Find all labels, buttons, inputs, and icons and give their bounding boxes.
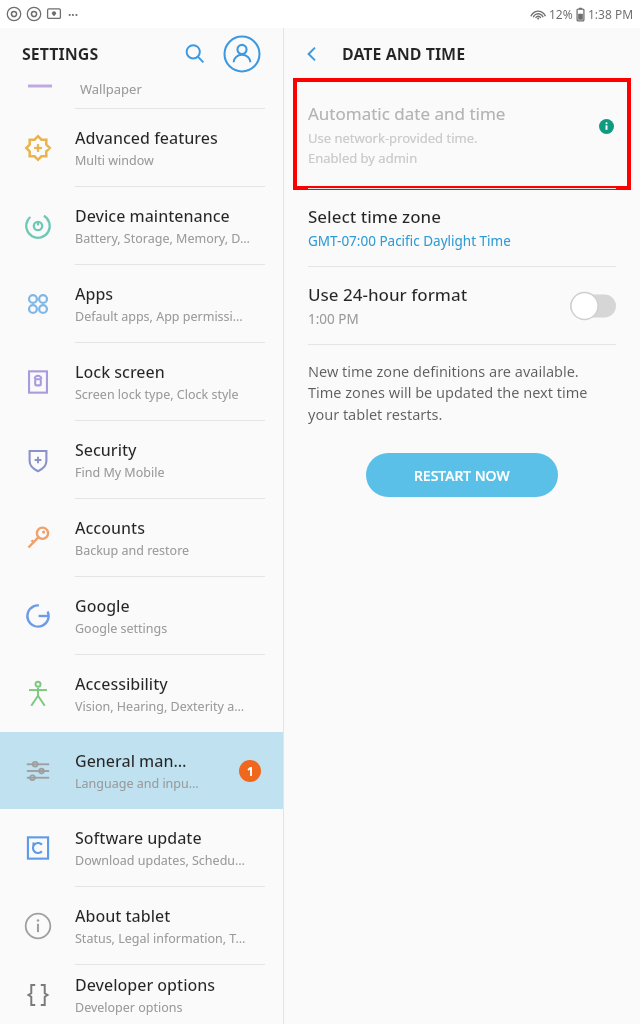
button[interactable]: Developer options (0, 965, 283, 1024)
staticText: Status, Legal information, T… (75, 930, 246, 947)
staticText: Apps (75, 283, 114, 305)
staticText: Accessibility (75, 673, 168, 695)
button[interactable]: Lock screen (0, 343, 283, 420)
staticText: General man… (75, 750, 187, 772)
staticText: Use network-provided time. (308, 129, 478, 147)
button[interactable]: Software update (0, 809, 283, 886)
button[interactable]: Apps (0, 265, 283, 342)
staticText: Enabled by admin (308, 149, 418, 167)
staticText: SETTINGS (22, 43, 99, 65)
staticText: Developer options (75, 974, 216, 996)
staticText: Device maintenance (75, 205, 230, 227)
staticText: Google settings (75, 620, 168, 637)
staticText: 12% (549, 6, 573, 22)
staticText: Find My Mobile (75, 464, 165, 481)
staticText: Download updates, Schedu… (75, 852, 245, 869)
staticText: About tablet (75, 905, 171, 927)
button[interactable]: Use 24-hour format (284, 267, 640, 344)
staticText: Battery, Storage, Memory, D… (75, 230, 250, 247)
button[interactable]: Search (175, 34, 215, 74)
staticText: Select time zone (308, 205, 442, 228)
button[interactable]: Google (0, 577, 283, 654)
staticText: Language and inpu… (75, 775, 199, 792)
staticText: Google (75, 595, 130, 617)
staticText: Developer options (75, 999, 183, 1016)
button[interactable]: About tablet (0, 887, 283, 964)
staticText: Security (75, 439, 137, 461)
button[interactable]: RESTART NOW (366, 453, 558, 497)
button[interactable]: Advanced features (0, 109, 283, 186)
button[interactable]: Security (0, 421, 283, 498)
button[interactable]: Device maintenance (0, 187, 283, 264)
staticText: Backup and restore (75, 542, 190, 559)
staticText: Vision, Hearing, Dexterity a… (75, 698, 245, 715)
staticText: Screen lock type, Clock style (75, 386, 239, 403)
staticText: Advanced features (75, 127, 218, 149)
button[interactable]: Accounts (0, 499, 283, 576)
staticText: Lock screen (75, 361, 165, 383)
staticText: New time zone definitions are available.… (308, 361, 616, 425)
staticText: Software update (75, 827, 202, 849)
staticText: GMT-07:00 Pacific Daylight Time (308, 232, 511, 250)
staticText: Wallpaper (80, 80, 142, 98)
staticText: Default apps, App permissi… (75, 308, 243, 325)
button[interactable]: Accessibility (0, 655, 283, 732)
staticText: RESTART NOW (414, 466, 510, 485)
staticText: Accounts (75, 517, 145, 539)
button[interactable]: Select time zone (284, 189, 640, 266)
staticText: DATE AND TIME (342, 43, 466, 65)
button[interactable]: Back (292, 34, 332, 74)
button[interactable]: Account (221, 33, 263, 75)
staticText: 1:00 PM (308, 310, 359, 328)
staticText: 1:38 PM (588, 6, 634, 22)
staticText: Use 24-hour format (308, 283, 468, 306)
button[interactable]: General man… (0, 732, 283, 809)
staticText: ··· (68, 6, 79, 22)
staticText: 1 (247, 763, 254, 779)
button[interactable]: Automatic date and time (284, 80, 640, 188)
staticText: Multi window (75, 152, 154, 169)
staticText: Automatic date and time (308, 102, 506, 125)
